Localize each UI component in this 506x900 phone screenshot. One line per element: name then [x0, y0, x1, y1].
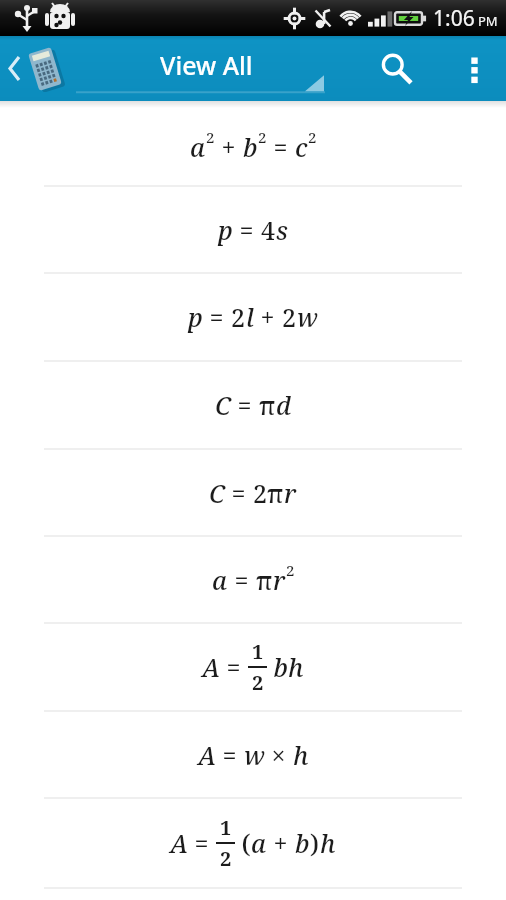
staticText: l	[246, 300, 254, 334]
staticText: =	[228, 563, 256, 597]
staticText: 2	[286, 560, 295, 580]
staticText: A	[198, 738, 216, 772]
staticText: b	[295, 826, 310, 860]
button[interactable]: A	[0, 712, 506, 797]
staticText: =	[216, 738, 244, 772]
staticText: 4	[261, 213, 276, 247]
button[interactable]: C	[0, 450, 506, 535]
staticText: =	[267, 130, 295, 164]
staticText: h	[320, 826, 336, 860]
button[interactable]: Navigate up	[0, 36, 76, 101]
staticText: A	[202, 650, 220, 684]
staticText: a	[190, 130, 206, 164]
staticText: =	[220, 650, 248, 684]
staticText: 2	[308, 127, 317, 147]
staticText: +	[267, 826, 295, 860]
staticText: +	[254, 300, 282, 334]
staticText: 2	[206, 127, 215, 147]
staticText: ×	[265, 738, 293, 772]
staticText: r	[284, 476, 297, 510]
staticText: 2	[282, 300, 297, 334]
staticText: A	[170, 826, 188, 860]
staticText: 1:06	[433, 4, 475, 33]
staticText: =	[225, 476, 253, 510]
staticText: a	[251, 826, 267, 860]
button[interactable]: A	[0, 624, 506, 710]
staticText: C	[209, 476, 225, 510]
staticText: π	[256, 563, 273, 597]
staticText: 2	[231, 300, 246, 334]
staticText: b	[243, 130, 258, 164]
button[interactable]: p	[0, 274, 506, 360]
button[interactable]: View All	[76, 36, 325, 101]
button[interactable]: Search	[364, 37, 428, 101]
staticText: =	[233, 213, 261, 247]
button[interactable]: More options	[442, 37, 506, 101]
staticText: a	[212, 563, 228, 597]
staticText: w	[244, 738, 265, 772]
staticText: 2	[258, 127, 267, 147]
staticText: PM	[478, 12, 498, 30]
staticText: s	[276, 213, 288, 247]
staticText: )	[310, 826, 320, 860]
staticText: 2π	[253, 476, 284, 510]
staticText: p	[218, 213, 233, 247]
staticText: +	[215, 130, 243, 164]
staticText: (	[235, 826, 251, 860]
staticText: d	[276, 388, 292, 422]
staticText: 2	[220, 845, 232, 872]
staticText: h	[293, 738, 309, 772]
button[interactable]: p	[0, 187, 506, 272]
staticText: 2	[252, 669, 264, 696]
staticText: bh	[267, 650, 304, 684]
button[interactable]: a	[0, 537, 506, 622]
staticText: c	[295, 130, 308, 164]
staticText: r	[273, 563, 286, 597]
button[interactable]: A	[0, 799, 506, 887]
staticText: w	[297, 300, 318, 334]
staticText: View All	[160, 48, 253, 82]
button[interactable]: a	[0, 108, 506, 185]
button[interactable]: C	[0, 362, 506, 448]
staticText: =	[188, 826, 216, 860]
staticText: π	[259, 388, 276, 422]
staticText: =	[231, 388, 259, 422]
staticText: 1	[252, 638, 264, 665]
staticText: =	[203, 300, 231, 334]
staticText: 1	[220, 814, 232, 841]
staticText: p	[188, 300, 203, 334]
staticText: C	[215, 388, 231, 422]
